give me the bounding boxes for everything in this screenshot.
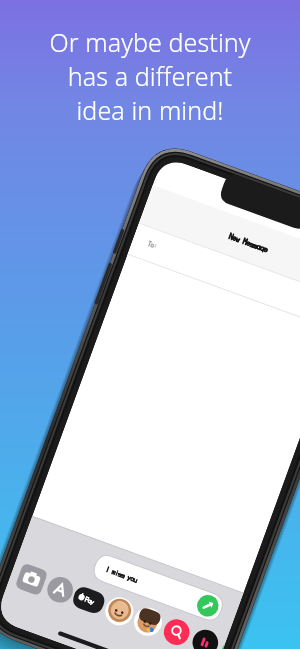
staticText: has a different bbox=[6, 59, 294, 93]
button[interactable]: Or maybe destiny has a different idea in… bbox=[6, 25, 294, 127]
staticText: idea in mind! bbox=[6, 93, 294, 127]
staticText: Or maybe destiny bbox=[6, 25, 294, 59]
